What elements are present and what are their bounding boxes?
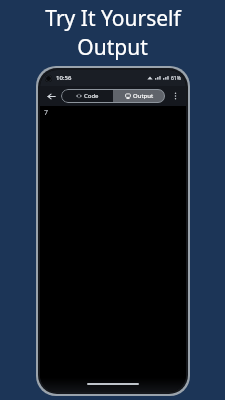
staticText: Try It Yourself [45,4,181,33]
button[interactable]: Back [45,90,57,102]
staticText: Output [77,33,148,62]
button[interactable]: Code [61,89,113,103]
staticText: Output [133,92,154,100]
staticText: 61% [171,75,181,82]
staticText: 7 [44,108,49,118]
staticText: 10:56 [56,74,72,82]
staticText: Code [84,92,99,100]
button[interactable]: More options [169,90,181,102]
button[interactable]: Output [113,89,165,103]
